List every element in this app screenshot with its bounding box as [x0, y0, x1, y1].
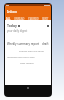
- staticText: shared with the team: [19, 49, 44, 52]
- button[interactable]: SENT: [42, 17, 49, 20]
- button[interactable]: STARRED: [28, 17, 39, 20]
- button[interactable]: Weekly summary report: [7, 42, 49, 46]
- staticText: your daily digest: [7, 29, 28, 33]
- button[interactable]: Inbox: [7, 9, 51, 14]
- button[interactable]: UNREAD: [14, 17, 25, 20]
- button[interactable]: ALL: [6, 17, 11, 20]
- staticText: Today: [7, 23, 17, 28]
- staticText: view details: [20, 61, 34, 64]
- staticText: Inbox: [7, 9, 17, 14]
- staticText: Weekly summary report: [7, 42, 40, 46]
- button[interactable]: Today: [7, 23, 49, 28]
- staticText: updated two hours ago: [7, 55, 35, 58]
- staticText: draft: [42, 42, 49, 46]
